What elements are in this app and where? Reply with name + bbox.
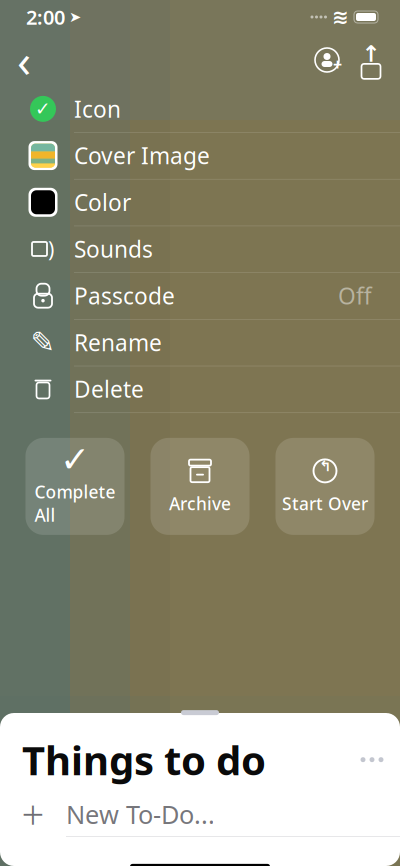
button[interactable]: ) — [0, 226, 400, 273]
staticText: Delete — [74, 374, 144, 404]
staticText: ↑ — [361, 41, 380, 67]
button[interactable]: Add Person — [305, 38, 349, 82]
staticText: 2:00 — [26, 4, 65, 30]
staticText: Sounds — [74, 234, 153, 264]
staticText: ➤ — [69, 9, 81, 25]
button[interactable]: Archive — [150, 438, 249, 535]
button[interactable]: ✓ — [0, 86, 400, 133]
staticText: ✎ — [30, 326, 55, 359]
button[interactable]: Back — [2, 38, 46, 82]
button[interactable]: ✓ — [25, 438, 124, 535]
staticText: Icon — [74, 94, 121, 124]
button[interactable]: Cover Image — [0, 133, 400, 179]
staticText: Cover Image — [74, 140, 210, 171]
button[interactable]: + — [0, 792, 400, 837]
staticText: + — [21, 788, 44, 841]
staticText: ↰ — [319, 458, 331, 474]
staticText: + — [333, 54, 342, 75]
staticText: Passcode — [74, 281, 175, 311]
button[interactable]: Color — [0, 179, 400, 226]
staticText: Archive — [169, 492, 231, 515]
staticText: ✓ — [60, 439, 90, 480]
staticText: Start Over — [282, 492, 368, 515]
staticText: ≋ — [332, 6, 349, 28]
button[interactable]: Share — [349, 38, 393, 82]
button[interactable]: Delete — [0, 366, 400, 413]
staticText: Things to do — [22, 733, 266, 786]
staticText: ‹ — [17, 30, 31, 90]
staticText: Complete All — [34, 480, 115, 526]
staticText: ) — [48, 235, 54, 263]
button[interactable]: ↰ — [275, 438, 374, 535]
staticText: Color — [74, 187, 131, 217]
staticText: Rename — [74, 327, 162, 357]
staticText: ✓ — [35, 98, 51, 119]
button[interactable]: ✎ — [0, 319, 400, 366]
button[interactable]: Passcode — [0, 273, 400, 319]
staticText: Off — [338, 281, 372, 311]
button[interactable]: More options — [350, 738, 394, 782]
staticText: New To-Do... — [66, 797, 215, 831]
